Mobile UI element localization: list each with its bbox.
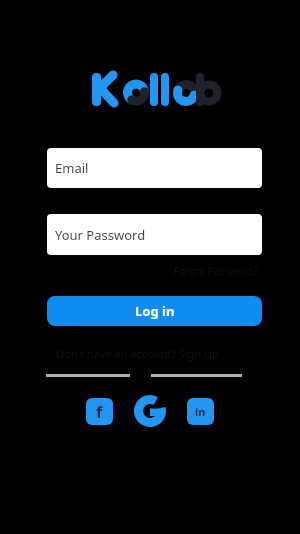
- button[interactable]: Forgot Password?: [154, 264, 258, 278]
- staticText: Forgot Password?: [174, 264, 258, 278]
- staticText: Email: [55, 159, 89, 177]
- staticText: Log in: [135, 302, 175, 320]
- button[interactable]: Log in: [47, 296, 262, 326]
- staticText: in: [195, 404, 206, 419]
- button[interactable]: in: [187, 398, 214, 425]
- staticText: Your Password: [55, 226, 146, 244]
- button[interactable]: Your Password: [47, 214, 262, 255]
- button[interactable]: Don't have an account? Sign Up: [0, 345, 274, 361]
- button[interactable]: Email: [47, 148, 262, 188]
- staticText: f: [96, 401, 103, 423]
- staticText: Don't have an account? Sign Up: [56, 346, 219, 361]
- button[interactable]: f: [86, 398, 113, 425]
- button[interactable]: [136, 397, 164, 425]
